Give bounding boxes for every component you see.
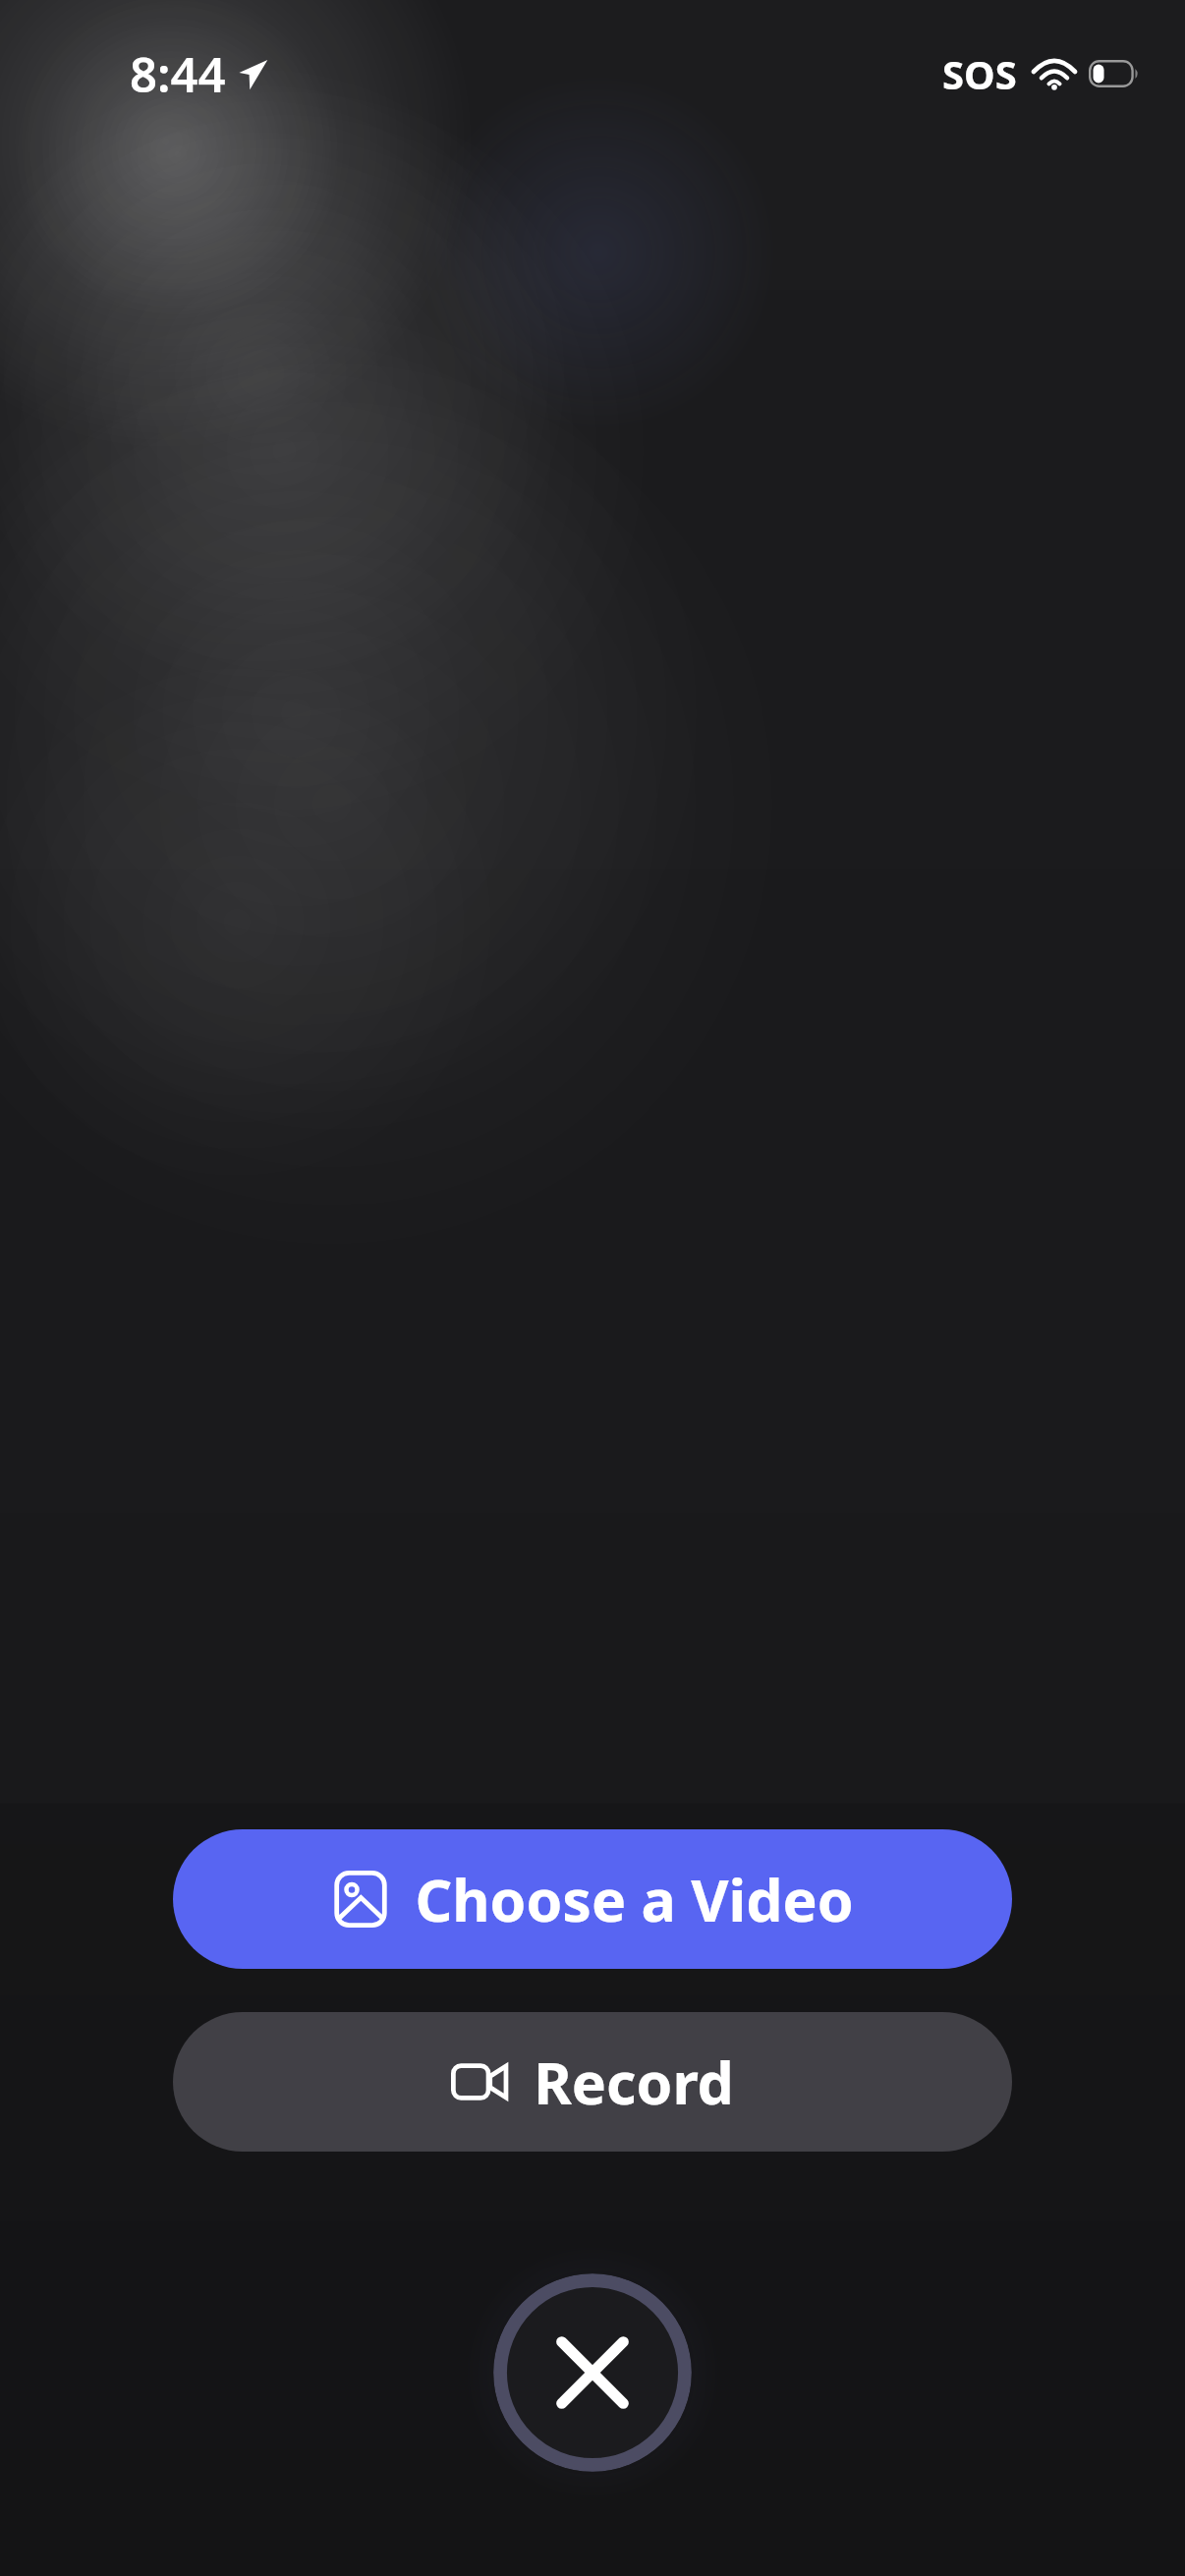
staticText: Record: [534, 2043, 734, 2121]
button[interactable]: Record: [173, 2012, 1012, 2152]
staticText: SOS: [942, 47, 1017, 100]
staticText: Choose a Video: [415, 1860, 854, 1938]
button[interactable]: Close: [493, 2273, 692, 2472]
staticText: 8:44: [130, 41, 226, 107]
button[interactable]: Choose a Video: [173, 1829, 1012, 1969]
